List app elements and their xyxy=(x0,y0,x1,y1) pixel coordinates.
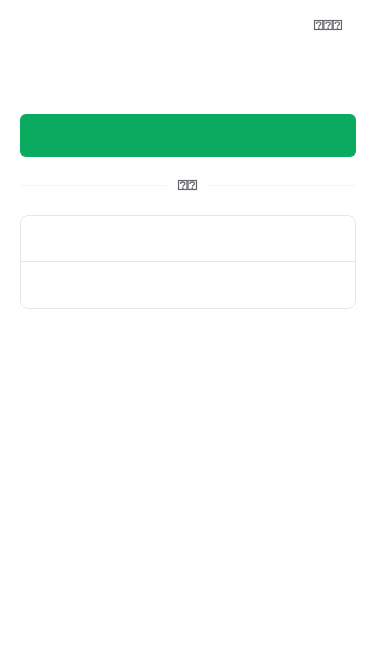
button[interactable]: 立即注册 xyxy=(314,20,342,30)
button[interactable]: 验证码 xyxy=(20,262,356,309)
button[interactable]: 手机号 xyxy=(20,215,356,261)
button[interactable]: 登录 xyxy=(20,114,356,157)
